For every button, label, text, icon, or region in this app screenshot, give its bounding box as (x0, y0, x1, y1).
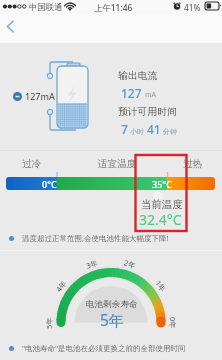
staticText: 3年 (85, 257, 99, 271)
staticText: 35°C (152, 178, 172, 190)
staticText: 分钟 (163, 127, 177, 136)
staticText: 过冷 (22, 158, 42, 170)
staticText: 0年 (168, 317, 178, 329)
staticText: 温度超过正常范围,会使电池性能大幅度下降! (22, 233, 169, 243)
staticText: 预计可用时间 (118, 106, 177, 118)
staticText: 中国联通 (29, 2, 63, 13)
staticText: 0°C (42, 178, 57, 190)
staticText: 小时 (130, 127, 144, 136)
staticText: 4年 (53, 278, 68, 294)
staticText: 过热 (183, 158, 203, 170)
staticText: 上午11:46 (94, 2, 133, 13)
button[interactable]: Back (0, 14, 26, 40)
staticText: 1年 (153, 278, 168, 294)
staticText: 当前温度 (141, 198, 183, 211)
staticText: 5年 (100, 309, 125, 330)
staticText: 2年 (123, 257, 137, 271)
staticText: 41% (184, 2, 201, 13)
staticText: 127 (121, 85, 142, 101)
staticText: 127mA (25, 90, 55, 102)
staticText: 输出电流 (118, 70, 158, 82)
staticText: 电池剩余寿命 (86, 299, 138, 310)
staticText: "电池寿命"是电池在必须更换之前的全部使用时间 (22, 343, 186, 353)
staticText: 7 (121, 121, 128, 137)
staticText: 5年 (44, 317, 54, 329)
staticText: 41 (147, 121, 161, 137)
staticText: mA (145, 90, 157, 100)
staticText: 32.4°C (139, 210, 182, 229)
staticText: 适宜温度 (98, 158, 137, 170)
